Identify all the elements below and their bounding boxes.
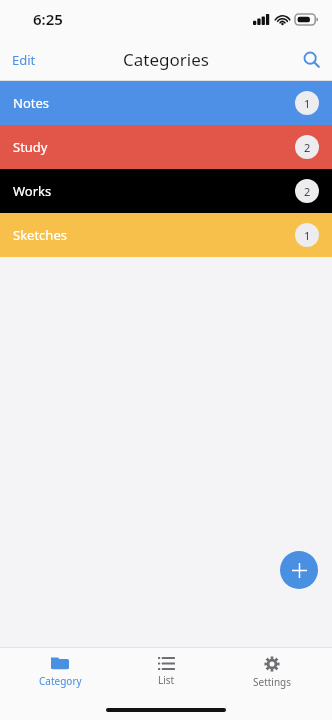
staticText: Edit	[12, 51, 36, 69]
staticText: 1	[304, 228, 311, 243]
staticText: 1	[304, 96, 311, 111]
button[interactable]: Add category	[280, 551, 318, 589]
button[interactable]: Notes	[0, 81, 332, 125]
button[interactable]: Category	[14, 652, 106, 692]
staticText: Category	[39, 674, 82, 688]
staticText: Study	[13, 138, 48, 156]
button[interactable]: List	[120, 653, 212, 691]
button[interactable]: Works	[0, 169, 332, 213]
staticText: 2	[304, 140, 311, 155]
staticText: 6:25	[33, 9, 63, 29]
staticText: List	[158, 673, 175, 687]
button[interactable]: Search	[291, 44, 332, 75]
button[interactable]: Settings	[226, 652, 318, 693]
button[interactable]: Study	[0, 125, 332, 169]
staticText: Sketches	[13, 226, 67, 244]
button[interactable]: Sketches	[0, 213, 332, 257]
staticText: 2	[304, 184, 311, 199]
staticText: Settings	[253, 675, 292, 689]
staticText: Works	[13, 182, 52, 200]
staticText: Categories	[123, 48, 209, 71]
button[interactable]: Edit	[0, 43, 48, 77]
staticText: Notes	[13, 94, 49, 112]
